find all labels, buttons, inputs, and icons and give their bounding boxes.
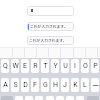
button[interactable]: R bbox=[31, 59, 39, 73]
button[interactable]: J bbox=[61, 78, 69, 92]
staticText: S bbox=[13, 81, 18, 89]
button[interactable] bbox=[37, 48, 49, 57]
staticText: Q bbox=[3, 62, 8, 70]
staticText: P bbox=[93, 62, 98, 70]
button[interactable]: M bbox=[76, 96, 84, 100]
button[interactable]: G bbox=[41, 78, 49, 92]
button[interactable]: V bbox=[46, 96, 54, 100]
button[interactable] bbox=[24, 48, 36, 57]
button[interactable]: U bbox=[61, 59, 69, 73]
button[interactable] bbox=[86, 48, 98, 57]
button[interactable] bbox=[73, 48, 85, 57]
button[interactable]: Q bbox=[1, 59, 9, 73]
staticText: I bbox=[74, 62, 76, 70]
staticText: K bbox=[73, 81, 78, 89]
button[interactable]: F bbox=[31, 78, 39, 92]
button[interactable]: B bbox=[56, 96, 64, 100]
button[interactable]: C bbox=[35, 96, 43, 100]
staticText: T bbox=[43, 62, 48, 70]
button[interactable]: これが入力されます。 bbox=[27, 36, 74, 45]
staticText: J bbox=[63, 81, 67, 89]
staticText: A bbox=[3, 81, 8, 89]
button[interactable]: D bbox=[21, 78, 29, 92]
button[interactable]: ー bbox=[91, 78, 99, 92]
staticText: D bbox=[23, 81, 28, 89]
staticText: U bbox=[63, 62, 68, 70]
staticText: H bbox=[53, 81, 58, 89]
button[interactable]: N bbox=[66, 96, 74, 100]
staticText: ー bbox=[92, 81, 99, 90]
button[interactable]: E bbox=[21, 59, 29, 73]
staticText: G bbox=[43, 81, 48, 89]
staticText: W bbox=[12, 62, 19, 70]
staticText: L bbox=[83, 81, 87, 89]
button[interactable]: I bbox=[71, 59, 79, 73]
button[interactable]: W bbox=[11, 59, 19, 73]
staticText: これが入力されます。 bbox=[29, 38, 67, 44]
staticText: R bbox=[33, 62, 38, 70]
button[interactable]: Backspace bbox=[87, 96, 99, 100]
button[interactable]: Search bbox=[27, 6, 74, 16]
button[interactable]: K bbox=[71, 78, 79, 92]
button[interactable]: S bbox=[11, 78, 19, 92]
button[interactable]: P bbox=[91, 59, 99, 73]
button[interactable]: Y bbox=[51, 59, 59, 73]
staticText: F bbox=[33, 81, 37, 89]
button[interactable]: T bbox=[41, 59, 49, 73]
button[interactable] bbox=[49, 48, 61, 57]
staticText: E bbox=[23, 62, 27, 70]
button[interactable]: H bbox=[51, 78, 59, 92]
button[interactable] bbox=[12, 48, 24, 57]
staticText: O bbox=[83, 62, 88, 70]
button[interactable]: Shift bbox=[1, 96, 13, 100]
staticText: Y bbox=[53, 62, 58, 70]
staticText: これが入力されます。 bbox=[30, 24, 68, 30]
button[interactable]: Z bbox=[15, 96, 23, 100]
button[interactable]: X bbox=[25, 96, 33, 100]
button[interactable]: A bbox=[1, 78, 9, 92]
button[interactable]: O bbox=[81, 59, 89, 73]
button[interactable]: L bbox=[81, 78, 89, 92]
button[interactable]: これが入力されます。 bbox=[27, 22, 74, 31]
